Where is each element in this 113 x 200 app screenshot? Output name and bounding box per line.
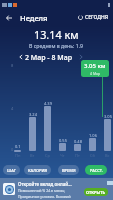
staticText: 4 <box>11 106 14 111</box>
staticText: КАЛОРИЯ <box>28 168 48 173</box>
staticText: Вс <box>105 153 110 158</box>
staticText: Чт <box>60 153 65 158</box>
button[interactable]: Previous week <box>16 52 25 61</box>
staticText: Ср <box>45 153 50 158</box>
staticText: Прозрачные условия. Высокий <box>18 194 71 199</box>
button[interactable]: Back <box>0 9 17 26</box>
staticText: Пн <box>15 153 21 158</box>
staticText: 1.06 <box>89 133 97 138</box>
staticText: СЕГОДНЯ <box>85 14 109 21</box>
staticText: 3.24 <box>29 112 37 117</box>
staticText: Откройте вклад онлай... <box>18 181 72 187</box>
staticText: Пт <box>75 153 80 158</box>
staticText: ВРЕМЯ <box>62 168 76 173</box>
staticText: 4 Мар <box>90 71 101 76</box>
staticText: 3.05 км <box>84 62 106 70</box>
staticText: 3.05 <box>104 114 112 119</box>
button[interactable]: 3.05 км <box>81 60 109 77</box>
staticText: Повышенный % 24 в месяц <box>18 188 65 193</box>
staticText: 0.48 <box>74 139 82 144</box>
button[interactable]: ВРЕМЯ <box>58 165 79 175</box>
staticText: Сб <box>90 153 95 158</box>
button[interactable]: СЕГОДНЯ <box>74 14 113 21</box>
button[interactable]: РАССТ. <box>85 165 107 175</box>
button[interactable]: Next week <box>76 52 85 61</box>
staticText: 4.39 <box>44 101 52 106</box>
staticText: ОТКРЫТЬ <box>86 190 106 195</box>
button[interactable]: ШАГ <box>3 165 20 175</box>
staticText: РАССТ. <box>90 168 103 173</box>
staticText: 13.14 км <box>34 27 79 42</box>
staticText: 2 Мар - 8 Мар <box>25 53 72 63</box>
staticText: 0.1 <box>15 144 21 149</box>
staticText: 0.55 <box>59 138 67 143</box>
staticText: Вт <box>30 153 35 158</box>
staticText: Неделя <box>20 13 48 23</box>
button[interactable]: КАЛОРИЯ <box>24 165 51 175</box>
button[interactable]: Откройте вклад онлай... <box>0 178 113 200</box>
staticText: ШАГ <box>7 168 16 173</box>
staticText: В среднем в день: 1.9 <box>29 42 84 49</box>
staticText: 8 <box>11 63 14 68</box>
staticText: 0 <box>11 147 14 152</box>
button[interactable]: ОТКРЫТЬ <box>84 188 108 196</box>
